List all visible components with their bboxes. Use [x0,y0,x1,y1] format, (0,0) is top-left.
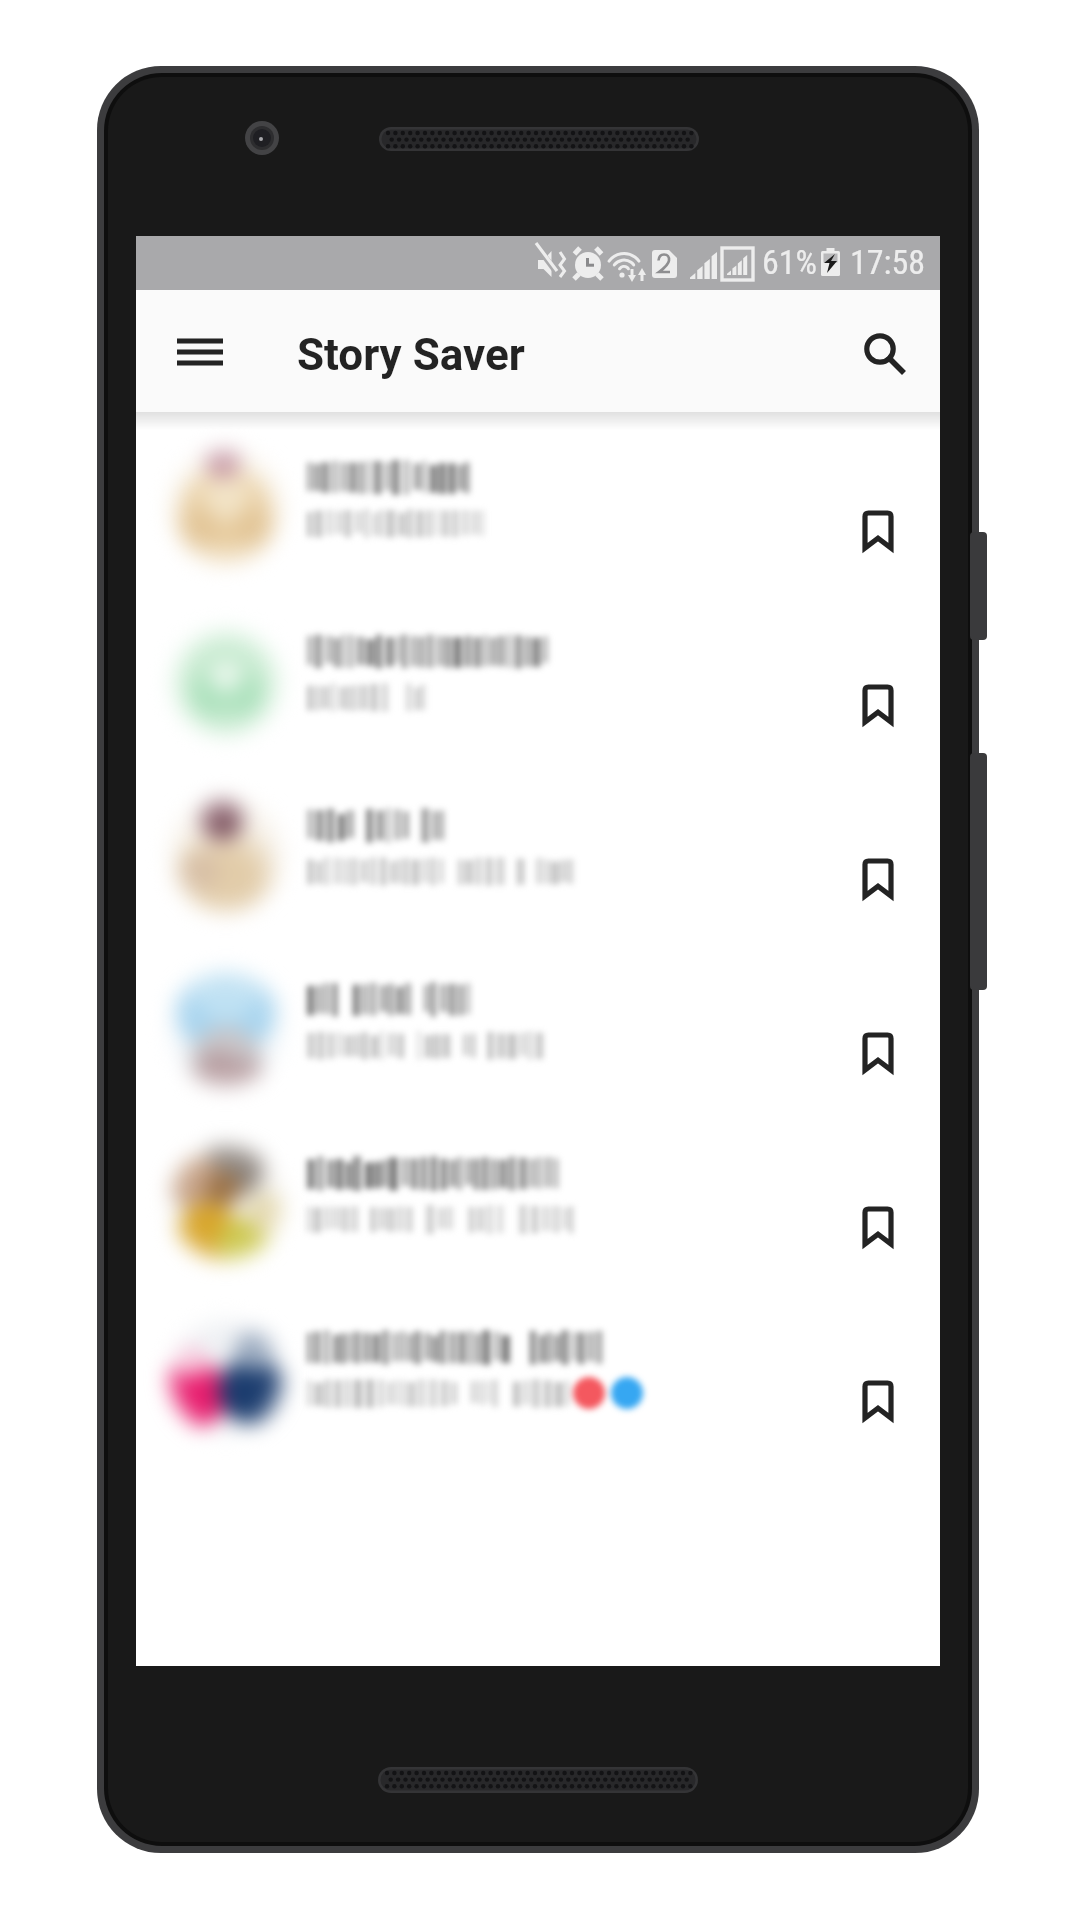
button[interactable]: Bookmark [136,418,940,592]
button[interactable]: Bookmark [136,766,940,940]
button[interactable]: Bookmark [838,838,918,918]
button[interactable]: Bookmark [136,1288,940,1462]
button[interactable]: Search [843,312,927,396]
button[interactable]: Bookmark [838,664,918,744]
button[interactable]: Open navigation menu [161,312,239,390]
staticText: 61% [762,242,818,282]
button[interactable]: Bookmark [136,592,940,766]
button[interactable]: Bookmark [838,1360,918,1440]
button[interactable]: Bookmark [838,1186,918,1266]
staticText: 17:58 [850,242,926,282]
staticText: Story Saver [297,329,525,381]
button[interactable]: Bookmark [136,940,940,1114]
button[interactable]: Bookmark [136,1114,940,1288]
button[interactable]: Bookmark [838,490,918,570]
button[interactable]: Bookmark [838,1012,918,1092]
